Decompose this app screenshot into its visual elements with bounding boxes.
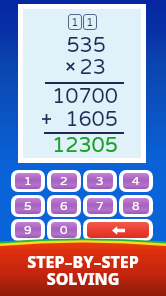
staticText: 1 <box>24 174 32 188</box>
staticText: 7 <box>96 199 104 213</box>
staticText: 1 <box>86 15 94 29</box>
staticText: 8 <box>132 199 140 213</box>
staticText: 4 <box>132 174 140 188</box>
button[interactable]: 8 <box>123 198 149 214</box>
staticText: 23 <box>0 55 106 80</box>
button[interactable]: 2 <box>51 173 77 189</box>
staticText: SOLVING <box>0 268 166 296</box>
staticText: 6 <box>60 199 68 213</box>
button[interactable]: 3 <box>87 173 113 189</box>
button[interactable]: Backspace <box>87 222 149 238</box>
button[interactable]: 9 <box>15 222 41 238</box>
staticText: 1 <box>71 15 79 29</box>
staticText: 10700 <box>8 84 118 109</box>
button[interactable]: 4 <box>123 173 149 189</box>
button[interactable]: 0 <box>51 222 77 238</box>
staticText: STEP–BY–STEP <box>0 251 166 296</box>
staticText: 5 <box>24 199 32 213</box>
staticText: 12305 <box>8 133 118 158</box>
button[interactable]: 1 <box>15 173 41 189</box>
button[interactable]: 5 <box>15 198 41 214</box>
staticText: 0 <box>60 223 68 237</box>
staticText: 3 <box>96 174 104 188</box>
staticText: 535 <box>0 33 106 58</box>
staticText: 2 <box>60 174 68 188</box>
staticText: 1605 <box>8 107 118 132</box>
button[interactable]: 6 <box>51 198 77 214</box>
button[interactable]: 7 <box>87 198 113 214</box>
staticText: 9 <box>24 223 32 237</box>
